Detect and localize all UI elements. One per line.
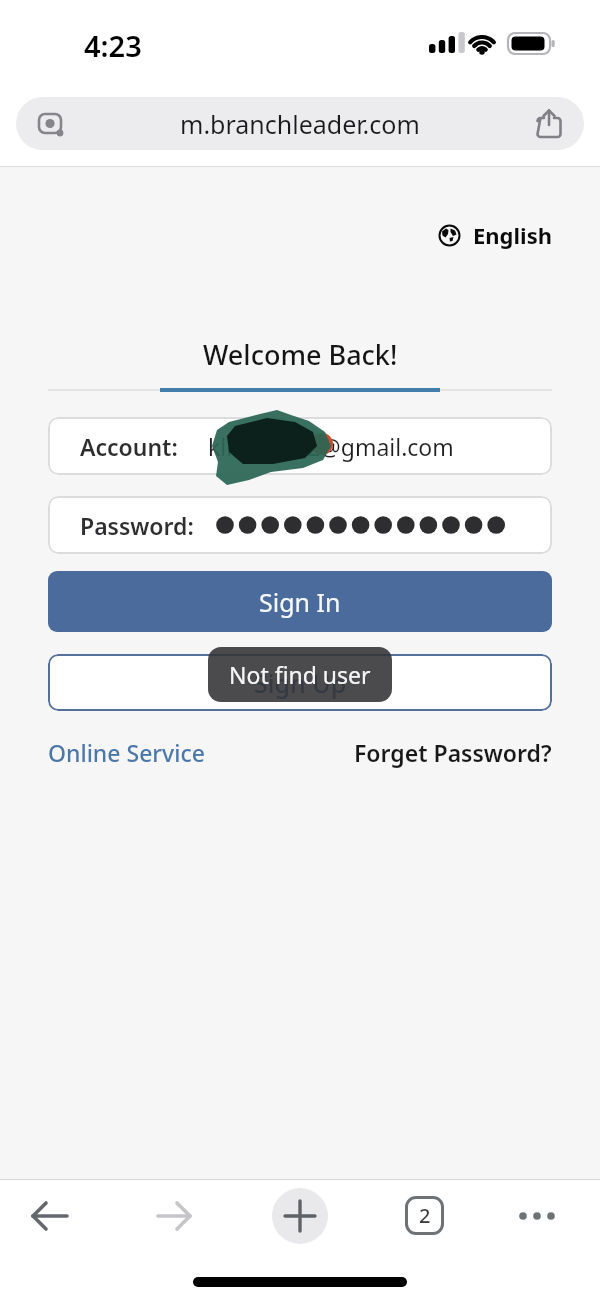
staticText: English bbox=[473, 220, 553, 250]
button[interactable]: Forget Password? bbox=[354, 737, 552, 768]
button[interactable]: Online Service bbox=[48, 737, 205, 768]
staticText: Welcome Back! bbox=[203, 336, 398, 373]
button[interactable]: Sign In bbox=[48, 571, 552, 632]
button[interactable] bbox=[150, 1192, 198, 1240]
staticText: klisabern2@gmail.com bbox=[208, 431, 454, 462]
staticText: 4:23 bbox=[84, 26, 142, 65]
staticText: Account: bbox=[80, 431, 178, 462]
staticText: Not find user bbox=[229, 659, 371, 690]
button[interactable]: Sign Up bbox=[48, 654, 552, 711]
button[interactable]: Account: bbox=[48, 417, 552, 475]
staticText: Sign Up bbox=[254, 666, 347, 700]
button[interactable]: 2 bbox=[405, 1196, 444, 1235]
button[interactable]: English bbox=[438, 220, 553, 250]
button[interactable]: m.branchleader.com bbox=[16, 97, 584, 150]
staticText: 2 bbox=[419, 1202, 431, 1229]
button[interactable] bbox=[26, 1192, 74, 1240]
button[interactable] bbox=[509, 1196, 565, 1236]
button[interactable]: Password: bbox=[48, 496, 552, 554]
button[interactable] bbox=[272, 1188, 328, 1244]
staticText: m.branchleader.com bbox=[180, 107, 420, 141]
staticText: Password: bbox=[80, 510, 194, 541]
staticText: Sign In bbox=[259, 585, 341, 619]
